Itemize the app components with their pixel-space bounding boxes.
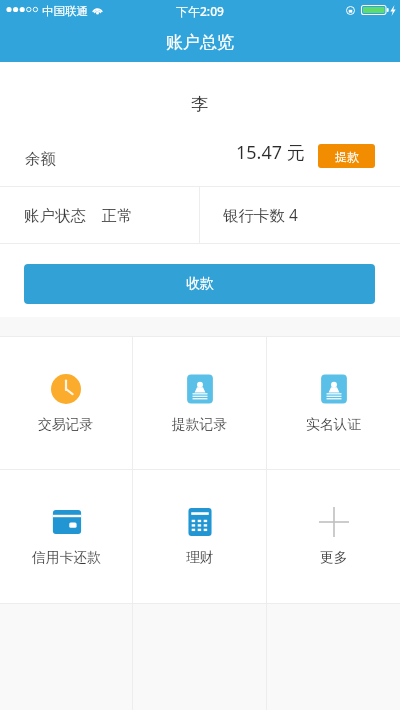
staticText: 中国联通 [42,4,88,18]
button[interactable]: 理财 [133,470,266,603]
button[interactable]: 更多 [267,470,400,603]
button[interactable]: 信用卡还款 [0,470,132,603]
button[interactable]: 实名认证 [267,337,400,469]
button[interactable]: 提款 [318,144,375,168]
staticText: 15.47 元 [236,140,305,165]
button[interactable]: 收款 [24,264,375,304]
staticText: 实名认证 [306,416,362,433]
staticText: 提款记录 [172,416,228,433]
staticText: 李 [191,93,209,115]
staticText: 交易记录 [38,416,94,433]
staticText: 信用卡还款 [32,549,101,566]
staticText: 收款 [186,275,214,293]
staticText: 账户总览 [166,32,234,53]
staticText: 账户状态 正常 [24,204,133,225]
staticText: 提款 [335,149,359,164]
button[interactable]: 提款记录 [133,337,266,469]
staticText: 余额 [25,149,56,169]
button[interactable]: 交易记录 [0,337,132,469]
staticText: 银行卡数 4 [223,204,298,225]
staticText: 理财 [186,549,214,566]
staticText: 更多 [320,549,348,566]
staticText: 下午2:09 [176,3,224,19]
